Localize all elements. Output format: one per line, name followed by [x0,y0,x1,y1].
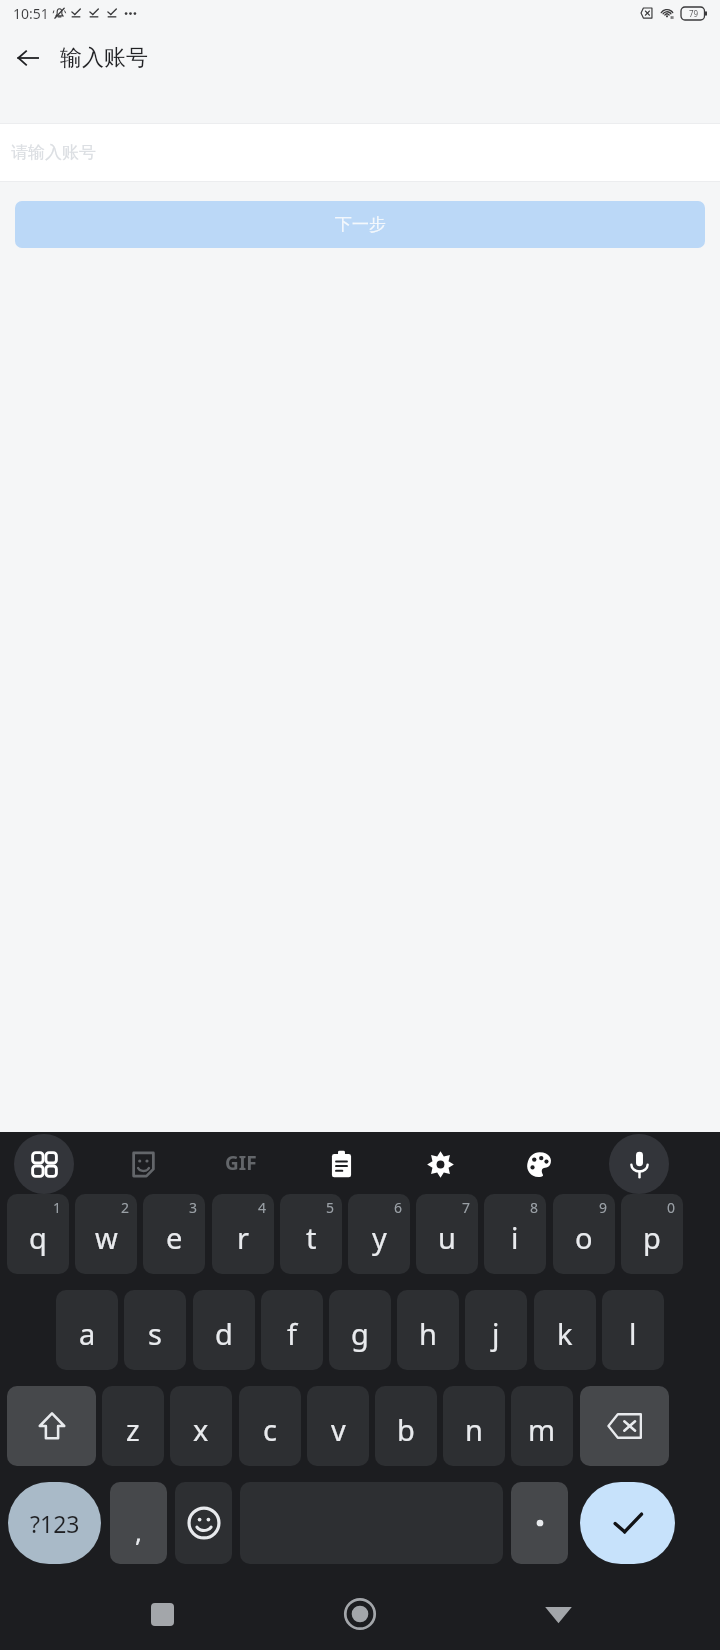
button[interactable]: Enter [580,1482,675,1564]
staticText: 8 [530,1198,539,1217]
staticText: 5 [326,1198,335,1217]
button[interactable]: Keyboard modes [14,1134,74,1194]
staticText: 9 [599,1198,608,1217]
button[interactable]: Themes [509,1134,569,1194]
staticText: h [419,1314,437,1353]
button[interactable]: e [143,1194,205,1274]
button[interactable]: j [465,1290,527,1370]
button[interactable]: m [511,1386,573,1466]
button[interactable]: 请输入账号 [0,124,720,181]
staticText: i [511,1218,519,1257]
staticText: x [193,1410,209,1449]
staticText: s [148,1314,162,1353]
staticText: f [287,1314,297,1353]
button[interactable]: p [621,1194,683,1274]
button[interactable]: w [75,1194,137,1274]
staticText: 2 [121,1198,130,1217]
button[interactable]: Recents [126,1578,198,1650]
staticText: a [79,1314,96,1353]
button[interactable]: v [307,1386,369,1466]
staticText: 7 [462,1198,471,1217]
staticText: j [492,1314,500,1353]
staticText: 0 [667,1198,676,1217]
staticText: p [643,1218,661,1257]
staticText: c [263,1410,277,1449]
button[interactable]: c [239,1386,301,1466]
staticText: y [372,1218,387,1257]
staticText: o [575,1218,593,1257]
staticText: 请输入账号 [11,142,96,163]
button[interactable]: t [280,1194,342,1274]
button[interactable]: k [534,1290,596,1370]
button[interactable]: x [170,1386,232,1466]
button[interactable]: GIF [211,1134,271,1194]
staticText: , [135,1514,142,1549]
staticText: 3 [189,1198,198,1217]
button[interactable]: Shift [7,1386,96,1466]
button[interactable]: y [348,1194,410,1274]
staticText: k [557,1314,573,1353]
button[interactable]: a [56,1290,118,1370]
staticText: l [629,1314,637,1353]
button[interactable]: Clipboard [311,1134,371,1194]
button[interactable]: Back [0,30,56,86]
button[interactable]: , [110,1482,167,1564]
button[interactable]: Emoji [175,1482,232,1564]
staticText: g [351,1314,369,1353]
staticText: v [331,1410,346,1449]
button[interactable]: ?123 [8,1482,101,1564]
staticText: GIF [225,1150,257,1176]
staticText: m [528,1410,556,1449]
staticText: 输入账号 [60,44,148,72]
staticText: 4 [258,1198,267,1217]
staticText: u [438,1218,456,1257]
button[interactable]: Backspace [580,1386,669,1466]
button[interactable]: g [329,1290,391,1370]
staticText: ?123 [30,1508,80,1539]
button[interactable]: Back [522,1578,594,1650]
button[interactable]: u [416,1194,478,1274]
button[interactable]: s [124,1290,186,1370]
button[interactable]: o [553,1194,615,1274]
staticText: 下一步 [335,214,386,235]
button[interactable]: Voice input [609,1134,669,1194]
button[interactable]: l [602,1290,664,1370]
button[interactable]: Settings [410,1134,470,1194]
button[interactable]: d [193,1290,255,1370]
staticText: 79 [689,8,699,19]
staticText: n [465,1410,483,1449]
staticText: w [95,1218,118,1257]
button[interactable]: 下一步 [15,201,705,248]
button[interactable]: Home [324,1578,396,1650]
button[interactable]: b [375,1386,437,1466]
staticText: z [126,1410,140,1449]
staticText: b [397,1410,415,1449]
staticText: 6 [394,1198,403,1217]
staticText: r [237,1218,249,1257]
button[interactable]: h [397,1290,459,1370]
staticText: e [166,1218,183,1257]
staticText: 1 [53,1198,62,1217]
button[interactable] [511,1482,568,1564]
button[interactable]: z [102,1386,164,1466]
staticText: d [215,1314,233,1353]
staticText: q [29,1218,47,1257]
button[interactable]: n [443,1386,505,1466]
button[interactable]: Stickers [113,1134,173,1194]
staticText: 10:51 [13,4,49,23]
staticText: t [306,1218,317,1257]
button[interactable]: i [484,1194,546,1274]
button[interactable]: r [212,1194,274,1274]
button[interactable]: f [261,1290,323,1370]
button[interactable]: q [7,1194,69,1274]
